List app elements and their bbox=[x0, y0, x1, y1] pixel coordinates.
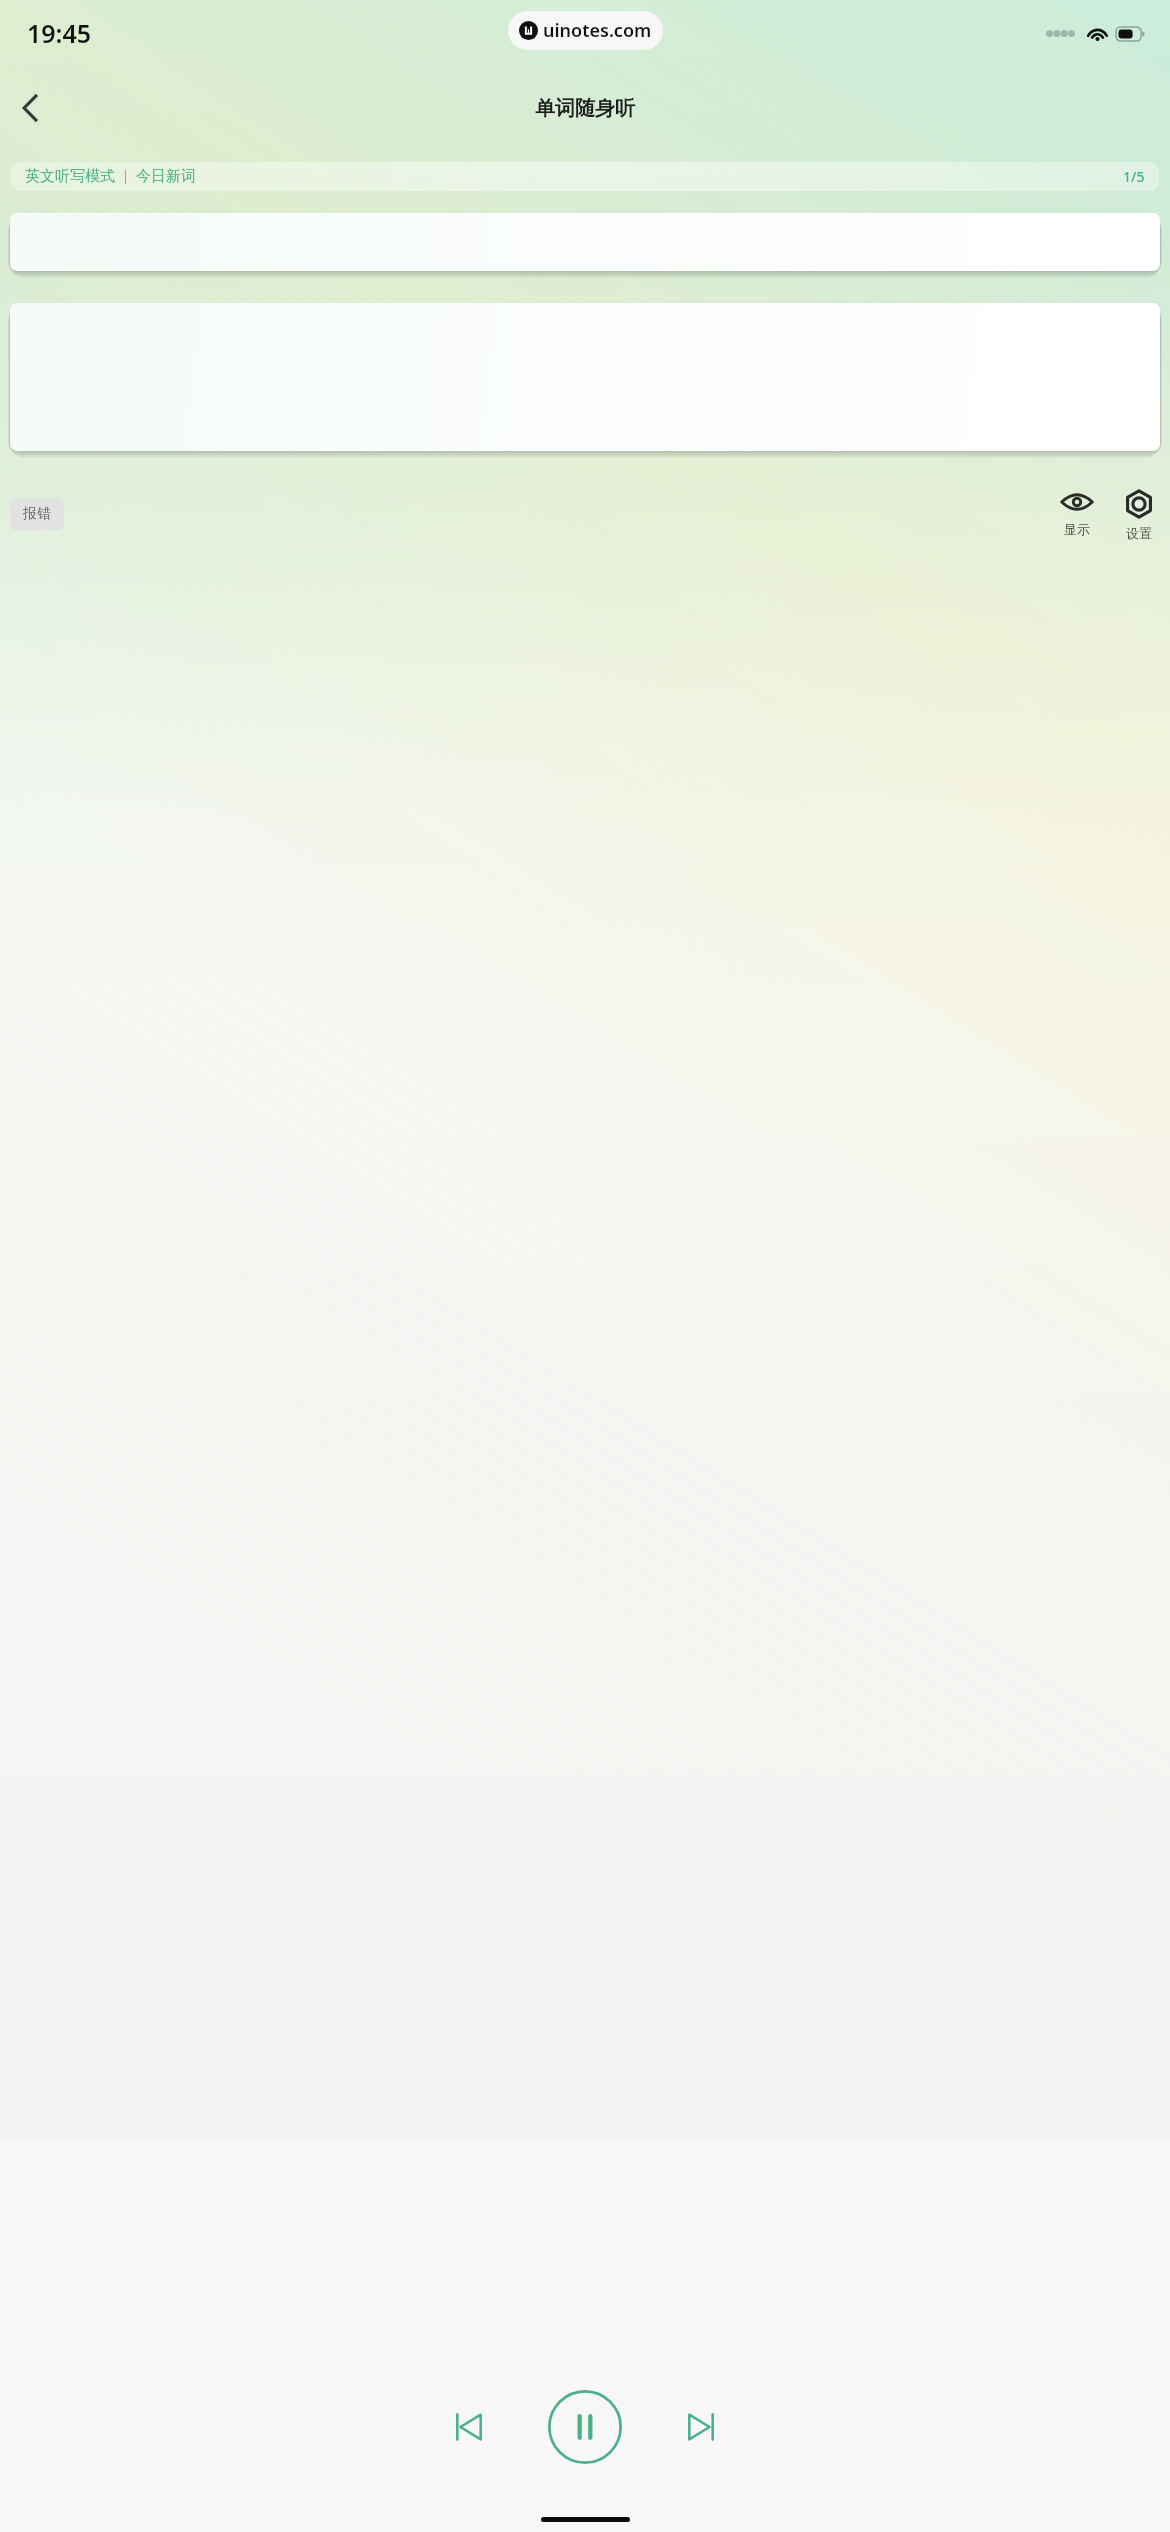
button[interactable]: Pause bbox=[541, 2383, 629, 2471]
button[interactable]: 显示 bbox=[1056, 487, 1098, 539]
button[interactable] bbox=[10, 213, 1160, 271]
button[interactable]: 设置 bbox=[1120, 487, 1158, 543]
button[interactable]: Back bbox=[4, 82, 56, 134]
button[interactable]: Next bbox=[665, 2391, 737, 2463]
staticText: 显示 bbox=[1064, 521, 1090, 537]
button[interactable]: 报错 bbox=[10, 498, 64, 530]
staticText: uinotes.com bbox=[543, 18, 652, 43]
staticText: 1/5 bbox=[1123, 167, 1145, 186]
staticText: 单词随身听 bbox=[535, 96, 635, 121]
staticText: 今日新词 bbox=[136, 167, 196, 186]
staticText: 设置 bbox=[1126, 525, 1152, 541]
staticText: 报错 bbox=[23, 505, 51, 523]
button[interactable]: Previous bbox=[433, 2391, 505, 2463]
staticText: 19:45 bbox=[27, 16, 92, 50]
button[interactable] bbox=[10, 303, 1160, 451]
staticText: 英文听写模式 bbox=[25, 167, 115, 186]
button[interactable]: 英文听写模式 bbox=[11, 162, 1159, 191]
